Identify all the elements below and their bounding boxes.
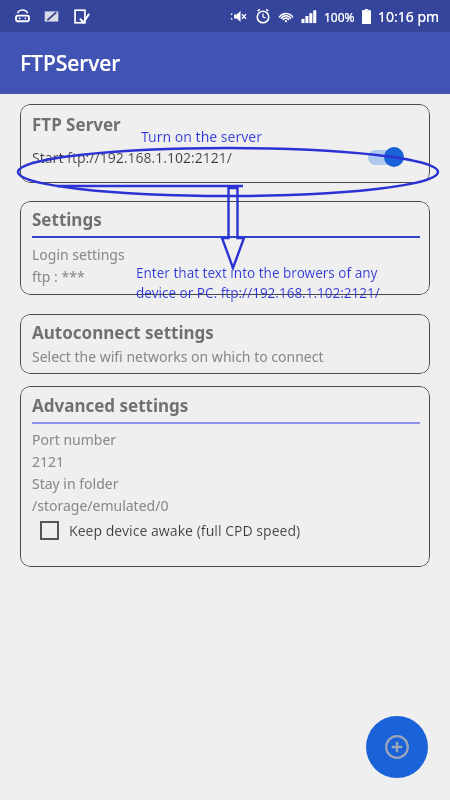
staticText: Stay in folder (32, 474, 119, 493)
staticText: Port number (32, 430, 117, 449)
button[interactable]: Add (366, 716, 428, 778)
button[interactable]: Toggle FTP server (368, 146, 406, 168)
staticText: Keep device awake (full CPD speed) (69, 521, 301, 540)
staticText: Settings (32, 208, 102, 231)
button[interactable]: FTP Server (20, 104, 430, 183)
button[interactable]: Settings (20, 201, 430, 295)
staticText: device or PC. ftp://192.168.1.102:2121/ (136, 284, 380, 302)
staticText: 10:16 pm (378, 7, 440, 26)
staticText: ftp : *** (32, 267, 85, 286)
staticText: /storage/emulated/0 (32, 496, 169, 515)
button[interactable]: Advanced settings (20, 386, 430, 567)
button[interactable]: Autoconnect settings (20, 314, 430, 374)
staticText: FTP Server (32, 113, 121, 136)
staticText: 2121 (32, 452, 65, 471)
staticText: Login settings (32, 245, 125, 264)
staticText: FTPServer (20, 49, 121, 78)
staticText: Turn on the server (141, 127, 262, 146)
staticText: 100% (324, 9, 355, 25)
staticText: Enter that text into the browers of any (136, 264, 378, 282)
staticText: Advanced settings (32, 394, 189, 417)
staticText: Autoconnect settings (32, 321, 214, 344)
staticText: Select the wifi networks on which to con… (32, 347, 324, 366)
button[interactable]: Keep device awake (full CPD speed) (40, 521, 301, 540)
staticText: Start ftp://192.168.1.102:2121/ (32, 148, 233, 167)
